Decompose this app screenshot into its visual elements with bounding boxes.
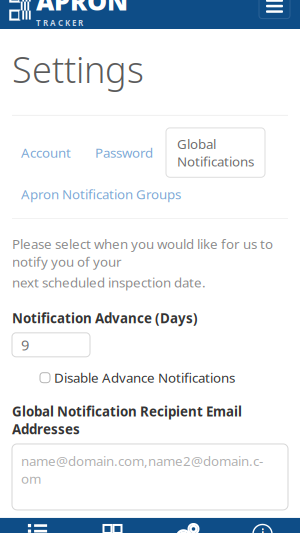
button[interactable]: Account bbox=[150, 521, 225, 533]
staticText: name@domain.com,name2@domain.com bbox=[21, 452, 263, 487]
staticText: Notification Advance (Days) bbox=[12, 309, 198, 327]
staticText: Password bbox=[95, 144, 153, 161]
button[interactable]: Global Notifications bbox=[166, 128, 265, 177]
staticText: Disable Advance Notifications bbox=[54, 369, 235, 386]
staticText: Account bbox=[21, 144, 71, 161]
button[interactable]: Notification advance days bbox=[12, 333, 90, 357]
staticText: Apron Notification Groups bbox=[21, 185, 181, 203]
staticText: Global Notification Recipient Email Addr… bbox=[12, 402, 242, 438]
button[interactable]: Disable Advance Notifications bbox=[40, 369, 235, 386]
button[interactable]: Menu bbox=[259, 0, 290, 19]
staticText: i bbox=[260, 523, 264, 533]
staticText: T R A C K E R bbox=[36, 18, 83, 28]
button[interactable]: Apron Notification Groups bbox=[10, 178, 192, 210]
button[interactable]: Password bbox=[84, 137, 164, 168]
button[interactable]: Account bbox=[10, 137, 82, 168]
button[interactable]: i bbox=[225, 521, 300, 533]
staticText: Settings bbox=[12, 45, 144, 93]
button[interactable]: QR Scanner bbox=[75, 521, 150, 533]
button[interactable]: Recipient email addresses bbox=[12, 444, 288, 510]
staticText: 9 bbox=[21, 335, 29, 355]
staticText: APRON bbox=[36, 0, 128, 17]
button[interactable]: Aprons bbox=[0, 521, 75, 533]
staticText: Please select when you would like for us… bbox=[12, 235, 273, 270]
staticText: Global Notifications bbox=[177, 135, 254, 170]
staticText: next scheduled inspection date. bbox=[12, 273, 206, 291]
button[interactable]: Apron Tracker home bbox=[10, 0, 135, 28]
